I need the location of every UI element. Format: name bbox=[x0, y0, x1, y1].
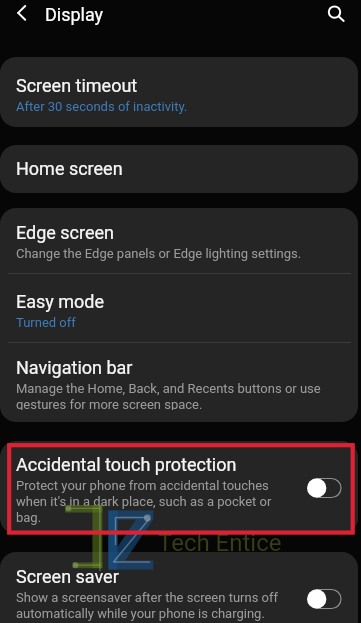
button[interactable]: Edge screen bbox=[0, 208, 358, 273]
button[interactable]: Accidental touch protection bbox=[0, 441, 358, 534]
staticText: Display bbox=[45, 4, 104, 25]
staticText: Screen timeout bbox=[16, 75, 138, 96]
staticText: Protect your phone from accidental touch… bbox=[16, 478, 296, 525]
button[interactable]: Back bbox=[8, 0, 37, 28]
staticText: Tech Entice bbox=[158, 529, 282, 557]
staticText: Navigation bar bbox=[16, 357, 133, 378]
staticText: Show a screensaver after the screen turn… bbox=[16, 590, 296, 621]
staticText: After 30 seconds of inactivity. bbox=[16, 99, 188, 114]
button[interactable]: Home screen bbox=[0, 145, 358, 191]
button[interactable]: Toggle off bbox=[304, 477, 341, 499]
button[interactable]: Screen saver bbox=[0, 552, 358, 623]
staticText: Turned off bbox=[16, 315, 76, 330]
button[interactable]: Screen timeout bbox=[0, 57, 358, 126]
staticText: Change the Edge panels or Edge lighting … bbox=[16, 246, 302, 261]
button[interactable]: Navigation bar bbox=[0, 343, 358, 422]
staticText: Accidental touch protection bbox=[16, 454, 237, 475]
staticText: Manage the Home, Back, and Recents butto… bbox=[16, 381, 342, 410]
staticText: Screen saver bbox=[16, 566, 119, 587]
button[interactable]: Search bbox=[318, 0, 352, 34]
staticText: Home screen bbox=[16, 158, 123, 179]
button[interactable]: Easy mode bbox=[0, 274, 358, 342]
staticText: Easy mode bbox=[16, 291, 105, 312]
staticText: Edge screen bbox=[16, 222, 115, 243]
button[interactable]: Toggle off bbox=[304, 588, 341, 610]
